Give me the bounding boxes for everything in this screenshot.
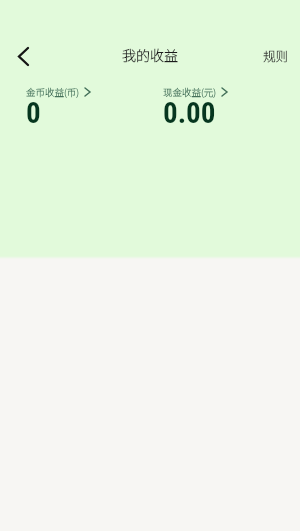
staticText: 规则 <box>263 46 289 64</box>
button[interactable]: 金币收益(币) <box>26 85 90 133</box>
button[interactable]: 现金收益(元) <box>163 85 227 133</box>
staticText: 我的收益 <box>122 45 178 65</box>
staticText: 0.00 <box>163 96 216 130</box>
staticText: 0 <box>26 96 41 130</box>
staticText: 现金收益(元) <box>163 85 217 99</box>
button[interactable]: 规则 <box>252 41 300 69</box>
button[interactable]: Back <box>0 41 46 71</box>
staticText: 金币收益(币) <box>26 85 80 99</box>
